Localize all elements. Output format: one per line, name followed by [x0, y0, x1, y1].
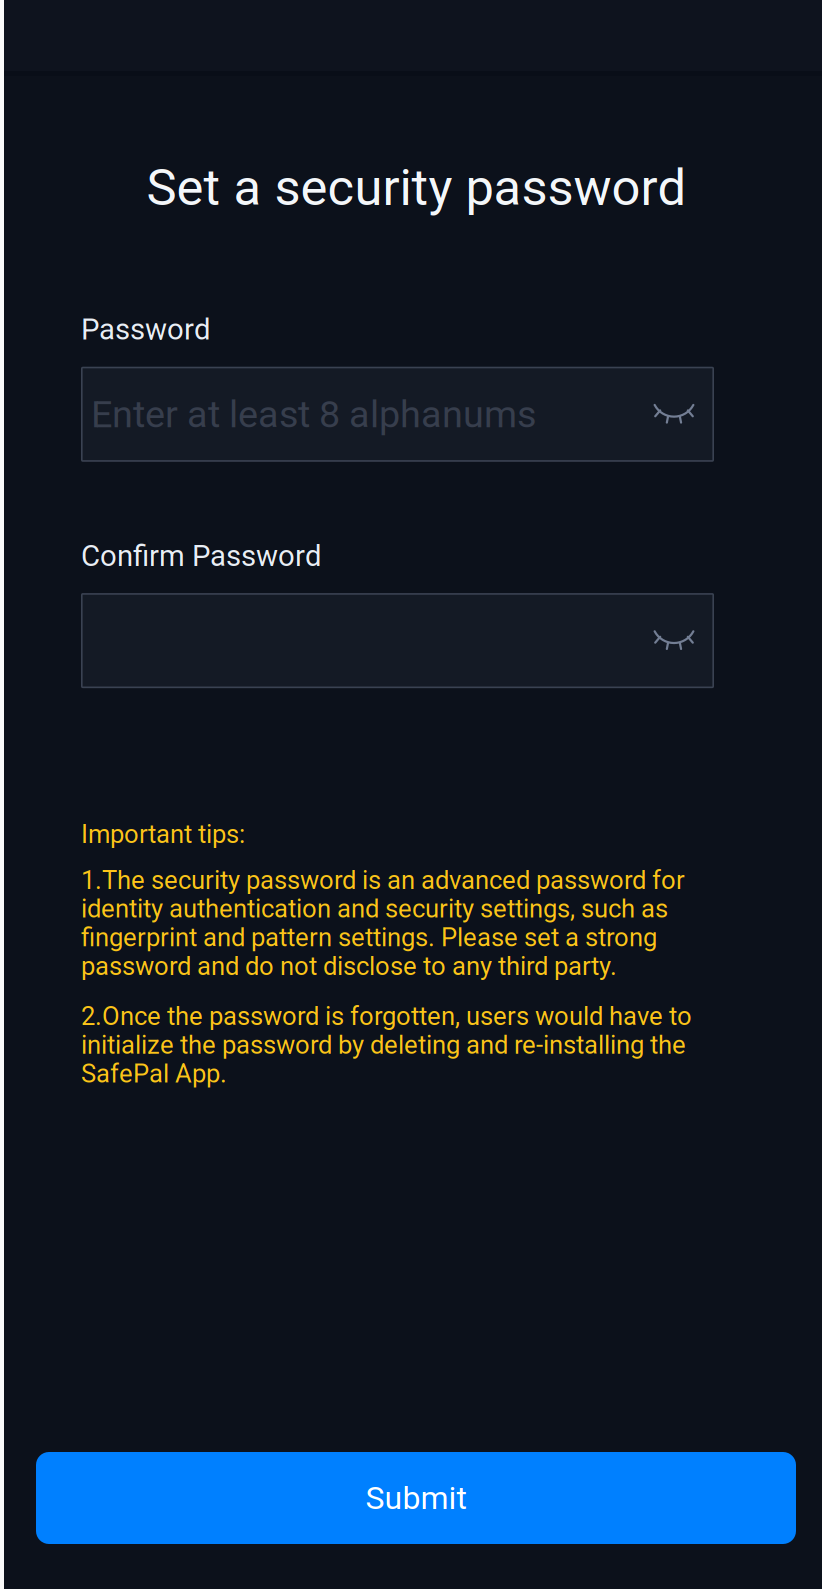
button[interactable]: Show password — [634, 367, 714, 462]
button[interactable]: Submit — [36, 1452, 796, 1544]
staticText: 2.Once the password is forgotten, users … — [81, 1001, 692, 1089]
button[interactable]: Confirm Password — [81, 593, 714, 688]
button[interactable]: Show password — [634, 593, 714, 688]
button[interactable]: Password — [81, 367, 714, 462]
staticText: Submit — [365, 1479, 466, 1517]
staticText: Confirm Password — [81, 539, 322, 573]
staticText: 1.The security password is an advanced p… — [81, 865, 685, 981]
staticText: Password — [81, 312, 211, 347]
staticText: Important tips: — [81, 819, 245, 849]
staticText: Enter at least 8 alphanums — [91, 392, 536, 436]
staticText: Set a security password — [146, 158, 686, 217]
